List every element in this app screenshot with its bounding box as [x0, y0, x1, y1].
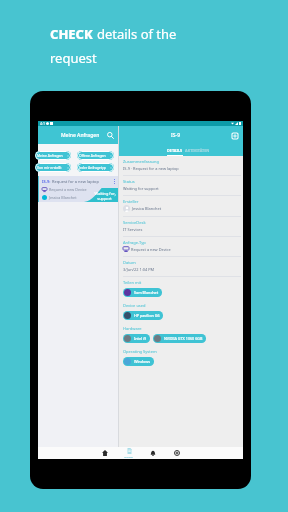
staticText: AKTIVITÄTEN	[185, 148, 210, 153]
button[interactable]: DETAILS	[159, 144, 190, 156]
button[interactable]: Settings	[172, 448, 182, 458]
staticText: Jessica Blanchet	[49, 195, 77, 200]
staticText: IS-9:	[42, 179, 51, 184]
staticText: Anfragen	[124, 455, 134, 458]
staticText: Request a new Device	[131, 247, 171, 252]
staticText: Meine Anfragen	[37, 153, 63, 158]
staticText: Zusammenfassung	[123, 159, 159, 164]
staticText: ServiceDesk	[123, 220, 146, 225]
staticText: NVIDIA GTX 1060 6GB	[164, 336, 203, 341]
staticText: Waiting for support	[94, 191, 115, 201]
staticText: Teilen mit	[123, 280, 142, 285]
staticText: Sam Blanchet	[134, 290, 159, 295]
button[interactable]: Von mir erstellt	[35, 163, 71, 172]
button[interactable]: Jeder Anfragetyp	[77, 163, 114, 172]
button[interactable]: Layout	[230, 131, 239, 140]
button[interactable]: Home	[100, 448, 110, 458]
button[interactable]: NVIDIA GTX 1060 6GB	[153, 334, 206, 343]
button[interactable]: IS-9:	[38, 176, 118, 202]
staticText: Status	[123, 179, 135, 184]
staticText: Windows	[134, 359, 151, 364]
staticText: Operating System	[123, 349, 157, 354]
staticText: Datum	[123, 260, 136, 265]
button[interactable]: Offene Anfragen	[77, 151, 114, 160]
staticText: CHECK	[50, 25, 97, 43]
button[interactable]: Windows	[123, 357, 154, 366]
staticText: Anfrage-Typ	[123, 240, 146, 245]
staticText: Von mir erstellt	[37, 165, 62, 170]
button[interactable]: HP pavilion G6	[123, 311, 163, 320]
staticText: Request a new Device	[49, 187, 87, 192]
button[interactable]: AKTIVITÄTEN	[181, 144, 214, 156]
staticText: Jessica Blanchet	[132, 206, 162, 211]
staticText: Waiting for support	[123, 186, 159, 191]
button[interactable]: Search	[105, 130, 115, 140]
staticText: DETAILS	[167, 148, 183, 153]
staticText: Jeder Anfragetyp	[79, 165, 106, 170]
staticText: 3/Jun/22 1:04 PM	[123, 267, 155, 272]
staticText: Device used	[123, 303, 146, 308]
staticText: Meine Anfragen	[61, 132, 100, 139]
staticText: 4:1	[40, 121, 45, 126]
staticText: IS-9	[171, 132, 180, 139]
button[interactable]: Intel i9	[123, 334, 150, 343]
staticText: Request for a new laptop	[52, 179, 99, 184]
staticText: details of the	[97, 25, 177, 43]
staticText: Ersteller	[123, 199, 139, 204]
button[interactable]: Sam Blanchet	[123, 288, 162, 297]
staticText: request	[50, 49, 97, 67]
button[interactable]: Notifications	[148, 448, 158, 458]
staticText: IT Services	[123, 227, 143, 232]
staticText: Intel i9	[134, 336, 147, 341]
button[interactable]: Meine Anfragen	[35, 151, 71, 160]
staticText: Hardware	[123, 326, 142, 331]
button[interactable]: Requests	[124, 448, 134, 458]
button[interactable]: More options	[114, 179, 115, 184]
staticText: IS-9 · Request for a new laptop	[123, 166, 179, 171]
staticText: HP pavilion G6	[134, 313, 160, 318]
staticText: Offene Anfragen	[79, 153, 106, 158]
